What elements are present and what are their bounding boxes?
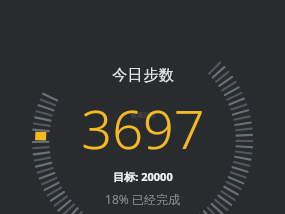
staticText: 今日步数 <box>112 66 174 85</box>
staticText: 18% 已经完成 <box>105 191 180 207</box>
button[interactable]: Today's step count dial <box>0 0 285 214</box>
staticText: 健康运动 <box>131 111 155 119</box>
button[interactable]: 目标: 20000 <box>113 169 173 184</box>
staticText: 3697 <box>81 91 205 165</box>
